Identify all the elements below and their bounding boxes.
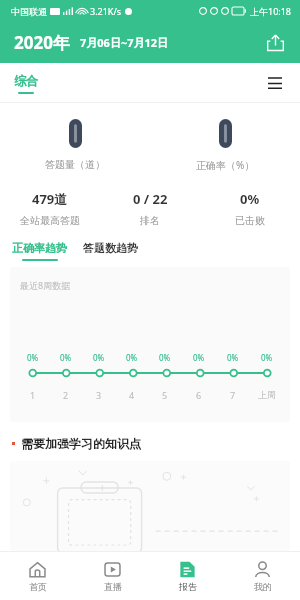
staticText: 全站最高答题	[20, 214, 80, 227]
staticText: 已击败	[235, 214, 265, 227]
staticText: 正确率（%）	[196, 158, 255, 172]
staticText: 0%	[227, 352, 239, 363]
button[interactable]: 答题数趋势	[83, 241, 138, 255]
button[interactable]: 综合	[14, 73, 38, 94]
staticText: 最近8周数据	[20, 279, 71, 291]
staticText: 直播	[104, 581, 122, 592]
staticText: 首页	[29, 581, 47, 592]
staticText: 2	[63, 389, 69, 401]
staticText: 479道	[32, 190, 68, 208]
button[interactable]: 我的	[225, 552, 300, 600]
staticText: 答题数趋势	[83, 241, 138, 255]
button[interactable]: 报告	[150, 552, 225, 600]
staticText: 报告	[179, 581, 197, 592]
staticText: 上午10:18	[250, 5, 292, 17]
staticText: 中国联通	[11, 6, 47, 17]
button[interactable]: 正确率趋势	[12, 241, 67, 261]
staticText: 6	[196, 389, 202, 401]
staticText: 7	[230, 389, 236, 401]
staticText: 7月06日~7月12日	[80, 35, 169, 50]
staticText: 正确率趋势	[12, 241, 67, 255]
staticText: 3.21K/s	[90, 5, 122, 17]
button[interactable]: 首页	[0, 552, 75, 600]
staticText: 0%	[240, 190, 260, 208]
staticText: 0%	[261, 352, 273, 363]
staticText: 1	[30, 389, 36, 401]
staticText: 0%	[126, 352, 138, 363]
staticText: 0 / 22	[133, 190, 168, 208]
staticText: 4	[129, 389, 135, 401]
staticText: 需要加强学习的知识点	[21, 436, 141, 451]
staticText: 0%	[193, 352, 205, 363]
button[interactable]: 分享	[260, 27, 290, 57]
staticText: 上周	[258, 389, 276, 400]
button[interactable]: 菜单	[262, 70, 288, 96]
staticText: 我的	[254, 581, 272, 592]
staticText: 2020年	[14, 31, 70, 54]
staticText: 0%	[93, 352, 105, 363]
staticText: 0%	[159, 352, 171, 363]
staticText: 综合	[14, 73, 38, 88]
staticText: 排名	[140, 214, 160, 227]
staticText: 0%	[27, 352, 39, 363]
staticText: 0%	[60, 352, 72, 363]
staticText: 5	[162, 389, 168, 401]
button[interactable]: 直播	[75, 552, 150, 600]
staticText: 3	[96, 389, 102, 401]
staticText: 答题量（道）	[45, 158, 105, 171]
